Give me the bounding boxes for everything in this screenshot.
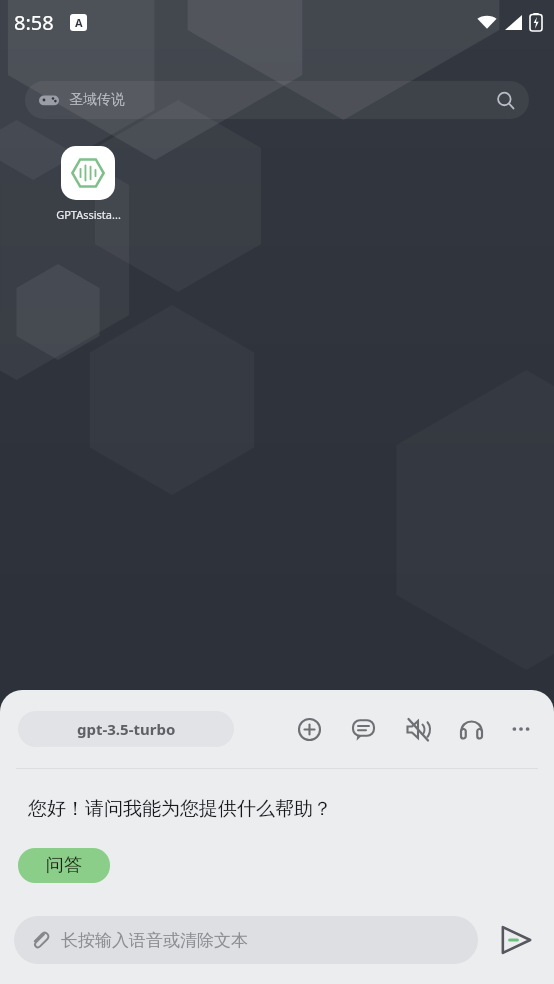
button[interactable]: 问答 (18, 848, 110, 883)
staticText: 问答 (46, 854, 82, 877)
button[interactable]: 圣域传说 (25, 81, 529, 119)
staticText: 圣域传说 (69, 91, 496, 109)
button[interactable]: Send (488, 913, 542, 967)
staticText: A (75, 15, 83, 30)
staticText: gpt-3.5-turbo (77, 719, 176, 739)
button[interactable]: 长按输入语音或清除文本 (14, 916, 478, 964)
staticText: 您好！请问我能为您提供什么帮助？ (28, 797, 332, 821)
button[interactable]: Messages (346, 712, 380, 746)
button[interactable]: gpt-3.5-turbo (18, 711, 234, 747)
staticText: 8:58 (14, 9, 54, 36)
button[interactable]: GPTAssista... (42, 146, 134, 222)
button[interactable]: Mute (400, 712, 434, 746)
staticText: 长按输入语音或清除文本 (61, 930, 248, 951)
button[interactable]: Voice mode (454, 712, 488, 746)
button[interactable]: More options (506, 714, 536, 744)
staticText: GPTAssista... (56, 207, 121, 222)
button[interactable]: New chat (292, 712, 326, 746)
